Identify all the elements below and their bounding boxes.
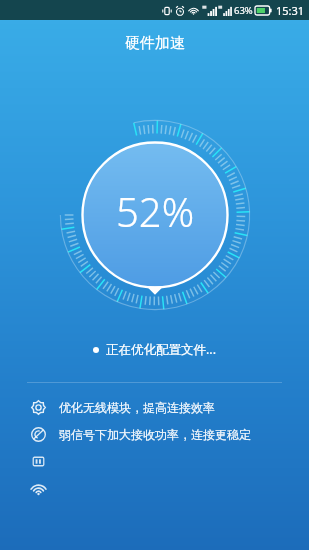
staticText: 硬件加速: [125, 34, 185, 53]
other: SIM card settings: [30, 453, 47, 470]
button[interactable]: Optimize wireless module: [0, 394, 309, 421]
staticText: 15:31: [276, 3, 305, 18]
button[interactable]: Increase reception power: [0, 421, 309, 448]
button[interactable]: Wi-Fi settings: [0, 475, 309, 502]
staticText: 正在优化配置文件...: [106, 341, 217, 358]
button[interactable]: SIM card settings: [0, 448, 309, 475]
other: Increase reception power: [30, 426, 47, 443]
staticText: 弱信号下加大接收功率，连接更稳定: [59, 427, 251, 442]
staticText: 优化无线模块，提高连接效率: [59, 400, 215, 415]
other: Wi-Fi settings: [30, 480, 47, 497]
staticText: 63%: [234, 4, 253, 17]
staticText: 52%: [116, 184, 195, 238]
other: Optimize wireless module: [30, 399, 47, 416]
